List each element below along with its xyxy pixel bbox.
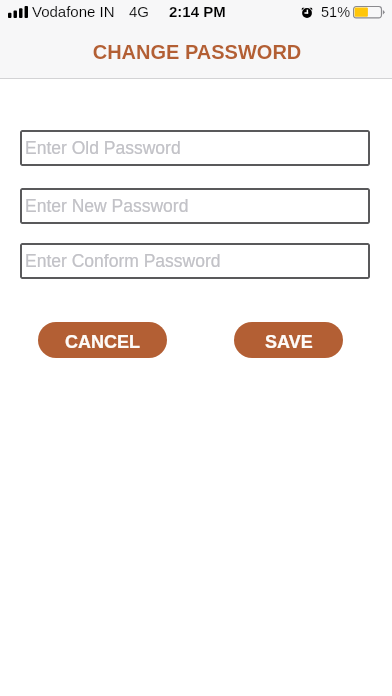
staticText: SAVE — [265, 332, 313, 352]
staticText: Enter Old Password — [25, 138, 181, 158]
button[interactable]: CANCEL — [38, 322, 167, 358]
button[interactable]: Enter Old Password — [20, 130, 370, 166]
staticText: 2:14 PM — [169, 3, 226, 20]
button[interactable]: Enter Conform Password — [20, 243, 370, 279]
staticText: 51% — [321, 4, 351, 20]
other: Cellular signal strength — [8, 6, 28, 18]
staticText: CHANGE PASSWORD — [1, 41, 392, 63]
button[interactable]: Enter New Password — [20, 188, 370, 224]
staticText: Enter New Password — [25, 196, 189, 216]
button[interactable]: SAVE — [234, 322, 343, 358]
other: Alarm set — [300, 5, 314, 19]
other: Battery 51 percent — [353, 6, 385, 19]
staticText: Enter Conform Password — [25, 251, 221, 271]
staticText: 4G — [129, 3, 150, 20]
staticText: CANCEL — [65, 332, 140, 352]
staticText: Vodafone IN — [32, 3, 115, 20]
